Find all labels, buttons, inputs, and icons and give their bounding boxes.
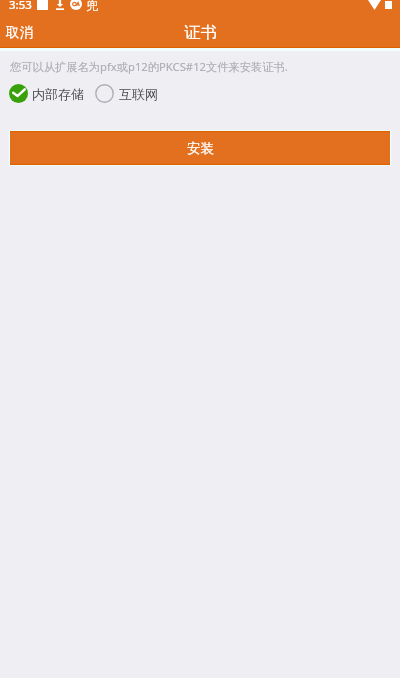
staticText: 取消	[6, 24, 33, 41]
staticText: 互联网	[119, 86, 158, 102]
button[interactable]: 取消	[0, 20, 39, 45]
other: Download	[56, 0, 64, 10]
button[interactable]: 内部存储	[0, 82, 86, 105]
button[interactable]: 互联网	[93, 82, 160, 105]
other: App notification	[70, 0, 82, 10]
other: Wi-Fi	[368, 0, 381, 10]
staticText: 内部存储	[32, 86, 84, 102]
staticText: 兜	[86, 0, 98, 13]
staticText: 证书	[184, 22, 217, 43]
button[interactable]: 安装	[10, 131, 390, 165]
staticText: 安装	[187, 140, 214, 157]
staticText: 您可以从扩展名为pfx或p12的PKCS#12文件来安装证书.	[10, 59, 288, 74]
staticText: 3:53	[9, 0, 32, 13]
